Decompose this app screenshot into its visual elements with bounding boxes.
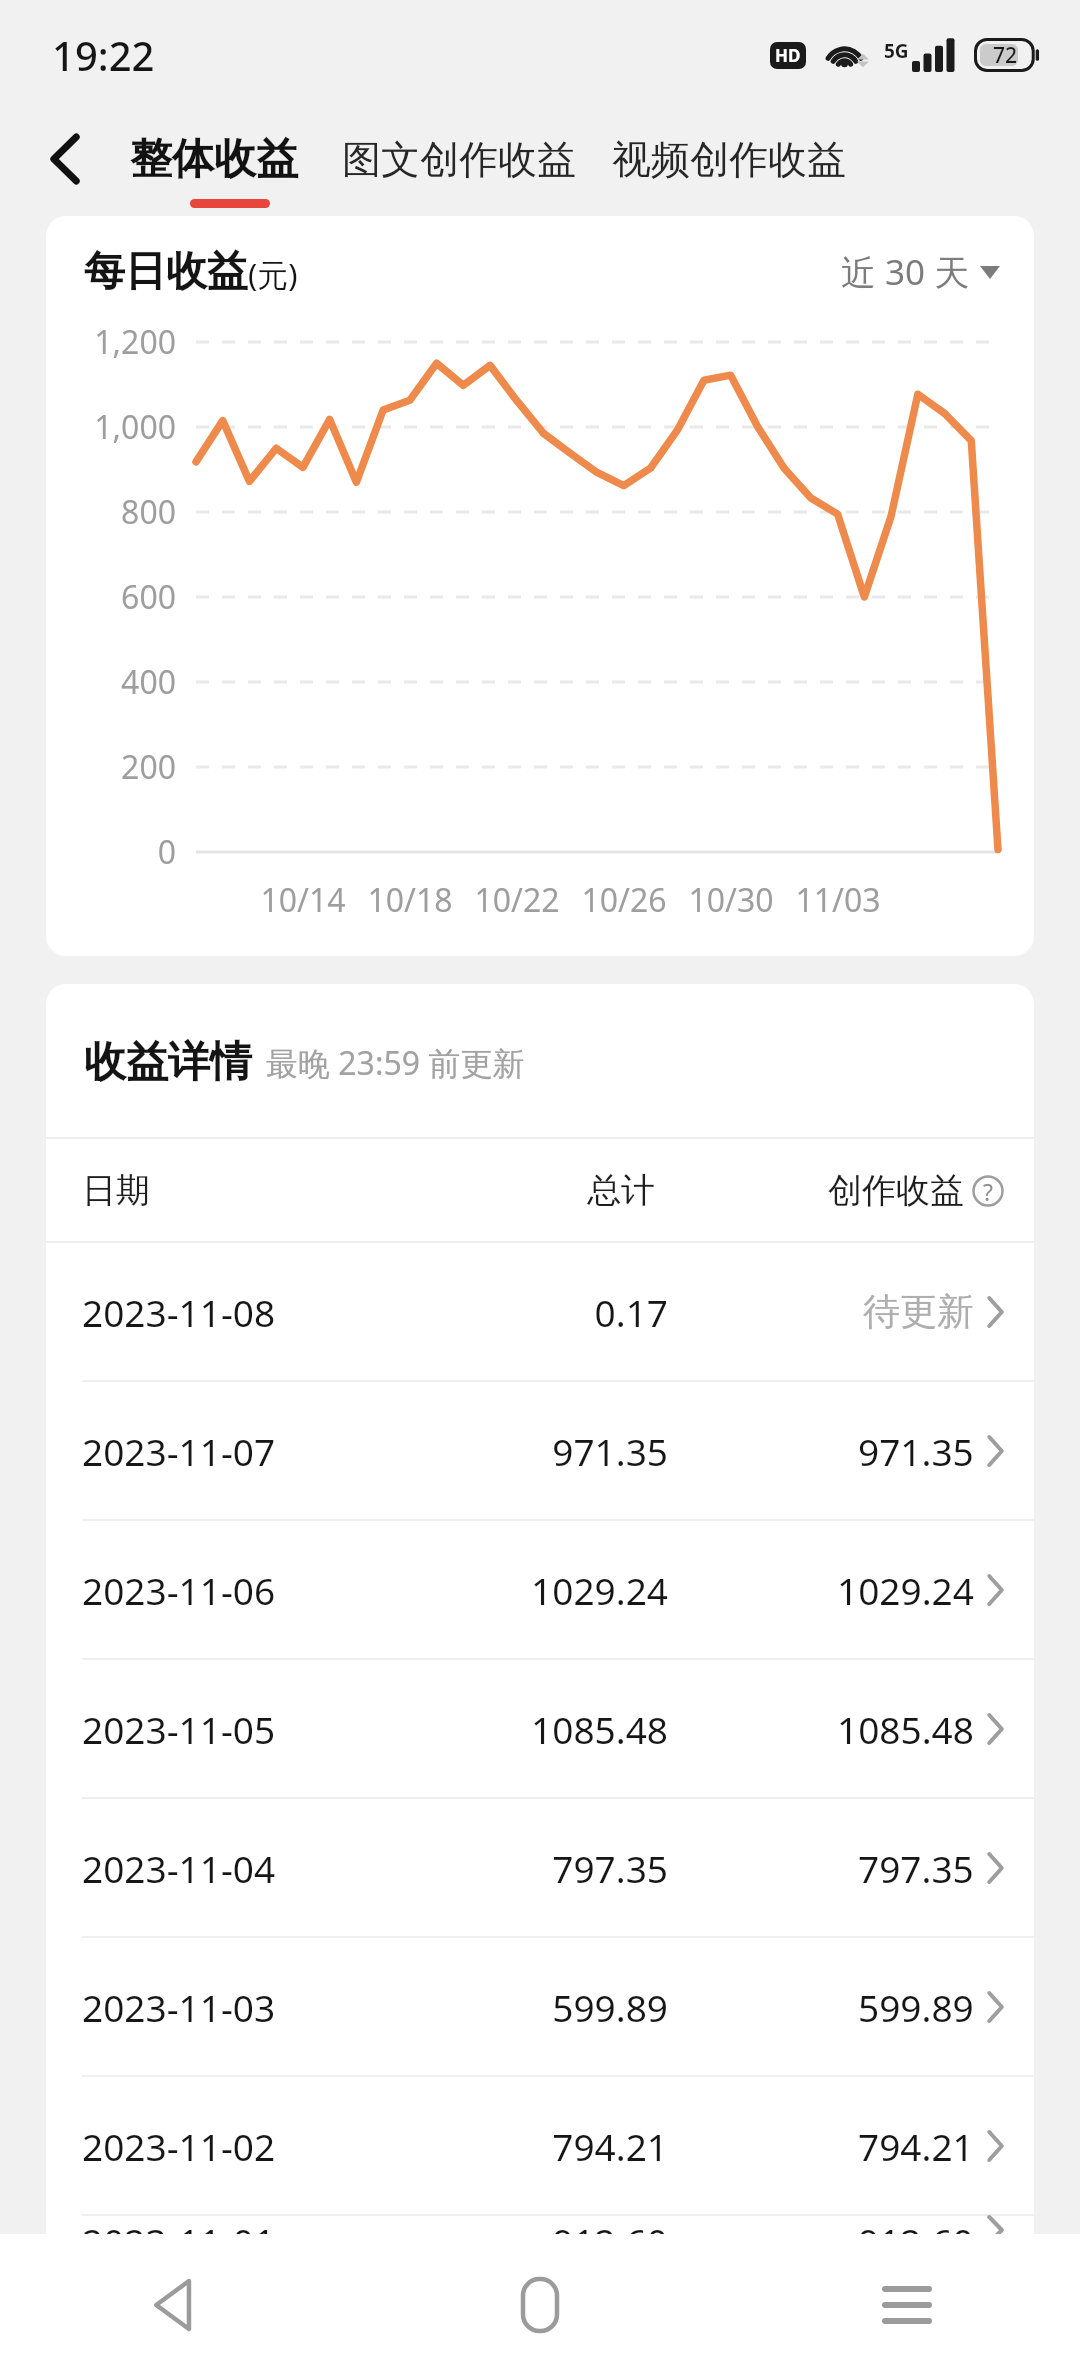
staticText: 2023-11-01 bbox=[82, 2216, 382, 2244]
staticText: 2023-11-02 bbox=[82, 2121, 382, 2171]
button[interactable]: Home bbox=[485, 2250, 595, 2360]
staticText: 10/18 bbox=[352, 878, 468, 922]
button[interactable]: 2023-11-03 bbox=[46, 1938, 1034, 2075]
staticText: 最晚 23:59 前更新 bbox=[266, 1041, 525, 1085]
staticText: 599.89 bbox=[858, 1982, 974, 2032]
button[interactable]: Help bbox=[972, 1175, 1004, 1207]
button[interactable]: 2023-11-08 bbox=[46, 1243, 1034, 1380]
button[interactable]: Recent apps bbox=[852, 2250, 962, 2360]
staticText: 19:22 bbox=[52, 28, 155, 82]
staticText: 0 bbox=[46, 830, 176, 874]
staticText: 971.35 bbox=[858, 1426, 974, 1476]
staticText: 10/22 bbox=[459, 878, 575, 922]
staticText: ? bbox=[983, 1176, 993, 1207]
staticText: 图文创作收益 bbox=[342, 135, 576, 184]
staticText: 2023-11-07 bbox=[82, 1426, 382, 1476]
staticText: 创作收益 bbox=[828, 1169, 964, 1212]
staticText: 2023-11-03 bbox=[82, 1982, 382, 2032]
staticText: 797.35 bbox=[858, 1843, 974, 1893]
staticText: HD bbox=[775, 44, 801, 67]
staticText: 1029.24 bbox=[837, 1565, 974, 1615]
button[interactable]: 2023-11-01 bbox=[46, 2216, 1034, 2244]
staticText: 794.21 bbox=[858, 2121, 974, 2171]
staticText: 72 bbox=[993, 41, 1018, 70]
staticText: 10/26 bbox=[566, 878, 682, 922]
staticText: 5G bbox=[884, 38, 909, 64]
staticText: 日期 bbox=[82, 1169, 376, 1212]
staticText: 2023-11-06 bbox=[82, 1565, 382, 1615]
button[interactable]: 近 30 天 bbox=[841, 248, 1000, 296]
staticText: 912.60 bbox=[858, 2216, 974, 2244]
staticText: 794.21 bbox=[382, 2121, 668, 2171]
staticText: 797.35 bbox=[382, 1843, 668, 1893]
staticText: 2023-11-08 bbox=[82, 1287, 382, 1337]
button[interactable]: Back bbox=[24, 117, 108, 201]
staticText: 800 bbox=[46, 490, 176, 534]
staticText: 视频创作收益 bbox=[612, 135, 846, 184]
button[interactable]: 2023-11-06 bbox=[46, 1521, 1034, 1658]
staticText: 912.60 bbox=[382, 2216, 668, 2244]
staticText: 1,000 bbox=[46, 405, 176, 449]
staticText: 971.35 bbox=[382, 1426, 668, 1476]
staticText: 1,200 bbox=[46, 320, 176, 364]
button[interactable]: Back bbox=[118, 2250, 228, 2360]
button[interactable]: 视频创作收益 bbox=[612, 135, 846, 184]
staticText: 总计 bbox=[376, 1169, 655, 1212]
staticText: 整体收益 bbox=[130, 133, 298, 186]
staticText: 400 bbox=[46, 660, 176, 704]
staticText: 0.17 bbox=[382, 1287, 668, 1337]
button[interactable]: 整体收益 bbox=[130, 133, 298, 186]
staticText: 600 bbox=[46, 575, 176, 619]
button[interactable]: 2023-11-04 bbox=[46, 1799, 1034, 1936]
staticText: 11/03 bbox=[780, 878, 896, 922]
staticText: 1085.48 bbox=[382, 1704, 668, 1754]
staticText: 近 30 天 bbox=[841, 248, 970, 296]
staticText: 200 bbox=[46, 745, 176, 789]
button[interactable]: 2023-11-05 bbox=[46, 1660, 1034, 1797]
staticText: 待更新 bbox=[863, 1288, 974, 1335]
staticText: 1085.48 bbox=[837, 1704, 974, 1754]
button[interactable]: 2023-11-02 bbox=[46, 2077, 1034, 2214]
staticText: (元) bbox=[248, 253, 298, 295]
staticText: 10/30 bbox=[673, 878, 789, 922]
staticText: 10/14 bbox=[245, 878, 361, 922]
staticText: 每日收益 bbox=[84, 246, 248, 298]
staticText: 2023-11-04 bbox=[82, 1843, 382, 1893]
button[interactable]: 2023-11-07 bbox=[46, 1382, 1034, 1519]
button[interactable]: 图文创作收益 bbox=[342, 135, 576, 184]
staticText: 2023-11-05 bbox=[82, 1704, 382, 1754]
staticText: 收益详情 bbox=[84, 1036, 252, 1089]
staticText: 599.89 bbox=[382, 1982, 668, 2032]
staticText: 1029.24 bbox=[382, 1565, 668, 1615]
